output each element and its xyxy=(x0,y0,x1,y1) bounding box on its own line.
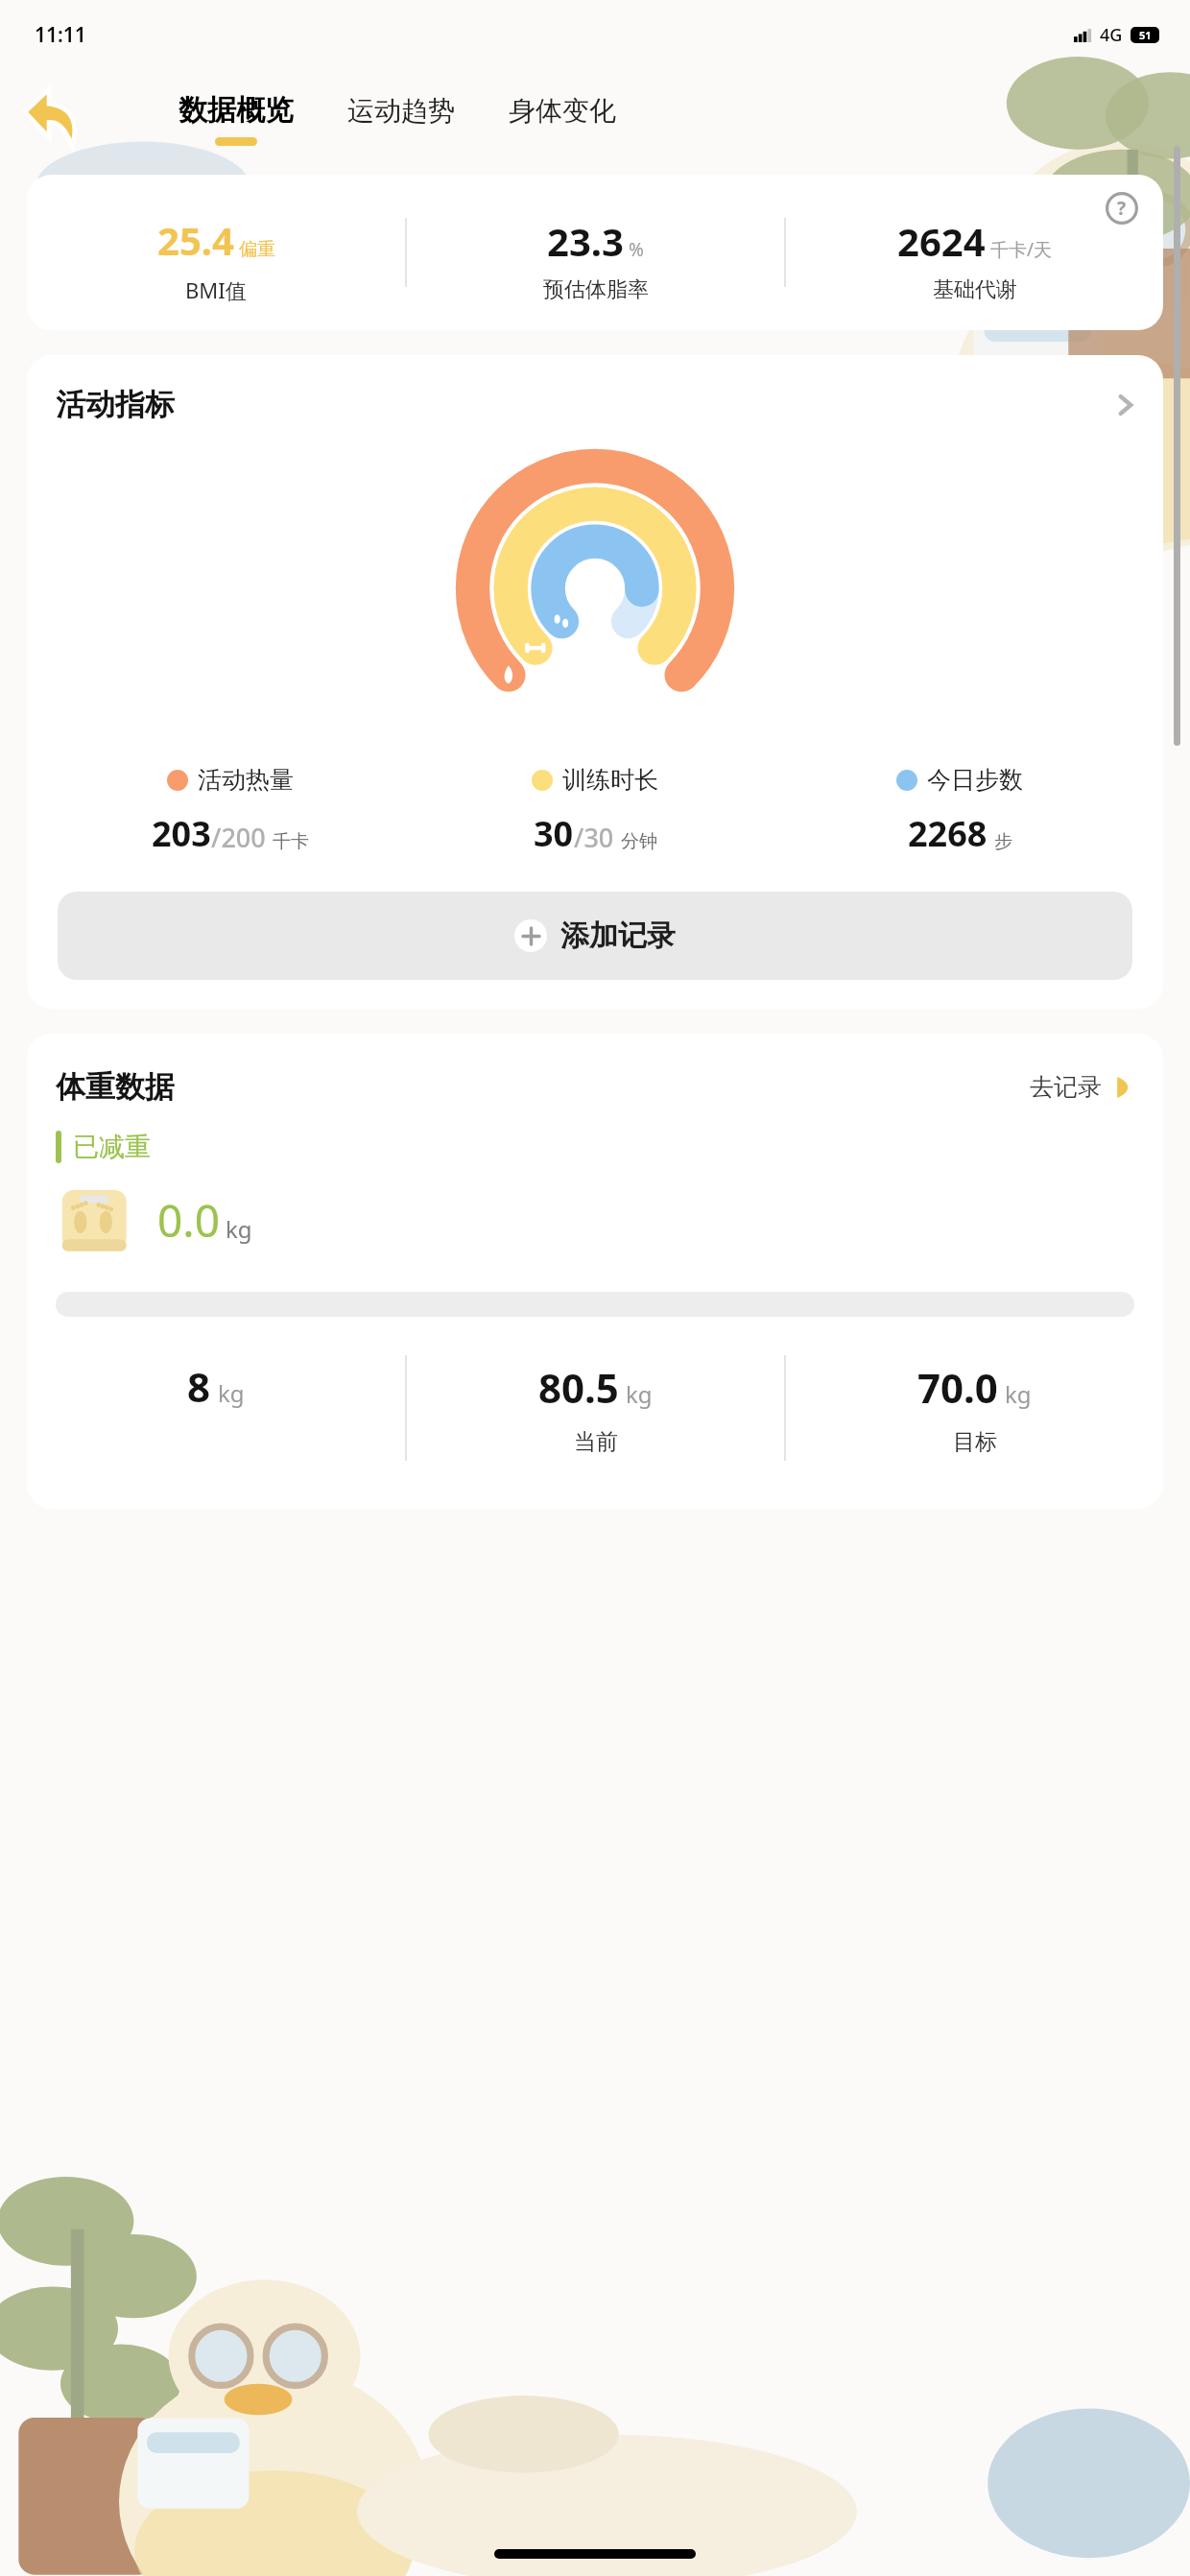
button[interactable]: 运动趋势 xyxy=(344,92,459,147)
staticText: 活动指标 xyxy=(56,386,175,423)
staticText: kg xyxy=(626,1378,653,1410)
button[interactable]: Help xyxy=(27,175,1163,330)
staticText: 预估体脂率 xyxy=(543,276,649,303)
staticText: /30 xyxy=(574,820,614,855)
staticText: 80.5 xyxy=(538,1360,619,1415)
staticText: 千卡 xyxy=(273,830,309,853)
staticText: 去记录 xyxy=(1030,1072,1102,1102)
staticText: 8 xyxy=(187,1359,211,1414)
staticText: 30 xyxy=(534,810,574,857)
staticText: 11:11 xyxy=(35,21,86,49)
staticText: BMI值 xyxy=(185,275,247,304)
staticText: 4G xyxy=(1100,23,1123,47)
staticText: 活动热量 xyxy=(198,765,294,795)
staticText: 0.0 xyxy=(157,1190,220,1251)
staticText: 分钟 xyxy=(621,830,657,853)
staticText: 51 xyxy=(1139,28,1152,42)
button[interactable]: 去记录 xyxy=(1024,1066,1138,1108)
staticText: 添加记录 xyxy=(560,918,676,954)
staticText: /200 xyxy=(211,820,266,855)
staticText: 训练时长 xyxy=(562,765,658,795)
staticText: 数据概览 xyxy=(178,92,294,129)
staticText: 今日步数 xyxy=(927,765,1023,795)
staticText: 70.0 xyxy=(917,1360,998,1415)
staticText: 运动趋势 xyxy=(347,94,455,128)
staticText: 25.4 xyxy=(157,214,234,266)
staticText: 23.3 xyxy=(547,215,624,267)
staticText: ? xyxy=(1117,196,1127,221)
button[interactable]: 数据概览 xyxy=(175,90,297,148)
staticText: kg xyxy=(226,1213,252,1245)
staticText: 2268 xyxy=(908,810,988,857)
button[interactable]: 活动指标 xyxy=(27,355,1163,427)
button[interactable]: Help xyxy=(1102,188,1142,228)
button[interactable]: 添加记录 xyxy=(58,892,1132,980)
staticText: kg xyxy=(1005,1378,1032,1410)
button[interactable]: Back xyxy=(21,86,81,146)
staticText: 基础代谢 xyxy=(933,276,1017,303)
staticText: 身体变化 xyxy=(509,94,616,128)
staticText: % xyxy=(629,237,644,262)
staticText: kg xyxy=(218,1377,245,1409)
staticText: 目标 xyxy=(953,1428,997,1456)
button[interactable]: 身体变化 xyxy=(505,92,620,147)
staticText: 千卡/天 xyxy=(990,237,1053,262)
staticText: 已减重 xyxy=(73,1131,151,1163)
staticText: 体重数据 xyxy=(56,1068,175,1106)
staticText: 203 xyxy=(152,810,211,857)
staticText: 当前 xyxy=(574,1428,618,1456)
staticText: 偏重 xyxy=(239,238,275,261)
staticText: 步 xyxy=(994,830,1012,853)
staticText: 2624 xyxy=(897,215,986,267)
